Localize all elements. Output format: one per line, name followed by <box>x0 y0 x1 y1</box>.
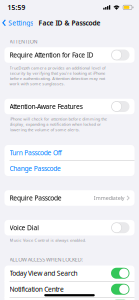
staticText: before authenticating. Attention detecti… <box>9 76 105 81</box>
button[interactable]: Change Passcode <box>4 161 134 176</box>
staticText: lowering the volume of some alerts. <box>9 127 80 132</box>
staticText: Turn Passcode Off <box>9 148 61 157</box>
staticText: Settings <box>8 18 33 27</box>
staticText: Require Passcode <box>9 194 62 202</box>
button[interactable]: Control Centre <box>4 297 134 300</box>
staticText: Immediately <box>94 194 125 202</box>
staticText: ATTENTION <box>9 38 37 45</box>
staticText: Today View and Search <box>9 269 77 278</box>
staticText: security by verifying that you're lookin… <box>9 70 105 76</box>
staticText: iPhone will check for attention before d… <box>9 116 107 122</box>
staticText: Notification Centre <box>9 285 64 294</box>
staticText: Face ID & Passcode <box>38 18 100 27</box>
button[interactable]: Require Passcode <box>4 190 134 206</box>
staticText: Voice Dial <box>9 223 39 232</box>
staticText: work with some sunglasses. <box>9 81 65 86</box>
button[interactable]: Settings <box>2 18 33 27</box>
button[interactable]: Turn Passcode Off <box>4 145 134 160</box>
button[interactable]: Notification Centre <box>4 281 134 297</box>
staticText: 15:59 <box>7 3 25 12</box>
button[interactable]: Today View and Search <box>4 265 134 281</box>
staticText: Attention-Aware Features <box>9 102 83 111</box>
button[interactable]: Voice Dial <box>4 220 134 235</box>
button[interactable]: Attention-Aware Features <box>4 99 134 114</box>
staticText: display, expanding a notification when l… <box>9 122 101 127</box>
staticText: Music Voice Control is always enabled. <box>9 238 86 243</box>
staticText: Require Attention for Face ID <box>9 51 93 59</box>
staticText: ALLOW ACCESS WHEN LOCKED: <box>9 256 83 263</box>
staticText: Change Passcode <box>9 164 61 173</box>
staticText: TrueDepth camera provides an additional … <box>9 65 105 70</box>
button[interactable]: Require Attention for Face ID <box>4 47 134 63</box>
